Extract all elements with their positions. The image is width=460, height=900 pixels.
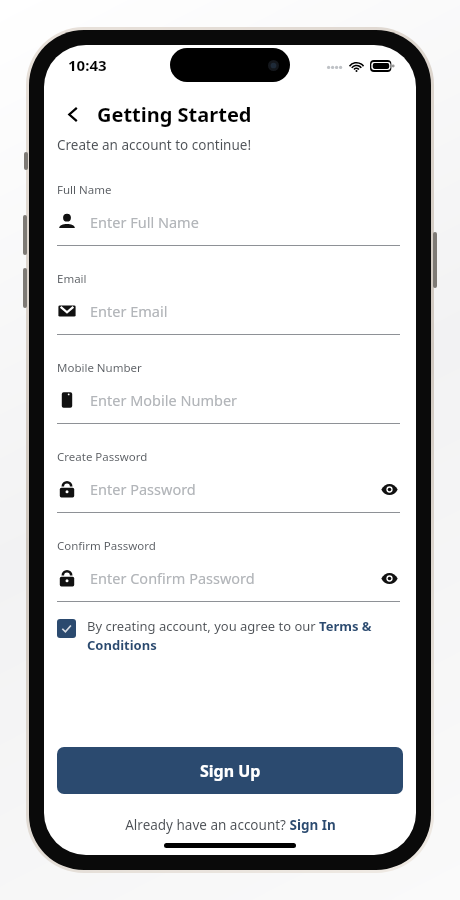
staticText: Already have an account? Sign In [125,816,336,834]
button[interactable]: Already have an account? Sign In [44,816,416,834]
staticText: Enter Confirm Password [90,568,255,588]
staticText: Full Name [57,182,112,198]
button[interactable]: Enter Full Name [57,205,400,239]
staticText: By creating account, you agree to our Te… [87,617,400,654]
button[interactable]: Enter Mobile Number [57,383,400,417]
staticText: 10:43 [68,55,107,75]
button[interactable]: Toggle password visibility [378,478,400,500]
button[interactable]: Sign Up [57,747,403,794]
staticText: Confirm Password [57,538,156,554]
staticText: Enter Password [90,479,196,499]
button[interactable]: Agree to terms [57,617,400,654]
staticText: Create Password [57,449,148,465]
staticText: Create an account to continue! [57,136,252,154]
other: Agree to terms [57,619,76,638]
staticText: Getting Started [97,101,252,128]
staticText: Enter Full Name [90,212,199,232]
staticText: Enter Email [90,301,168,321]
button[interactable]: Toggle password visibility [378,567,400,589]
button[interactable]: Enter Password [57,472,400,506]
button[interactable]: Back [56,97,90,131]
staticText: Mobile Number [57,360,142,376]
button[interactable]: Enter Confirm Password [57,561,400,595]
staticText: Sign Up [200,760,261,782]
button[interactable]: Enter Email [57,294,400,328]
staticText: Email [57,271,87,287]
staticText: Enter Mobile Number [90,390,238,410]
